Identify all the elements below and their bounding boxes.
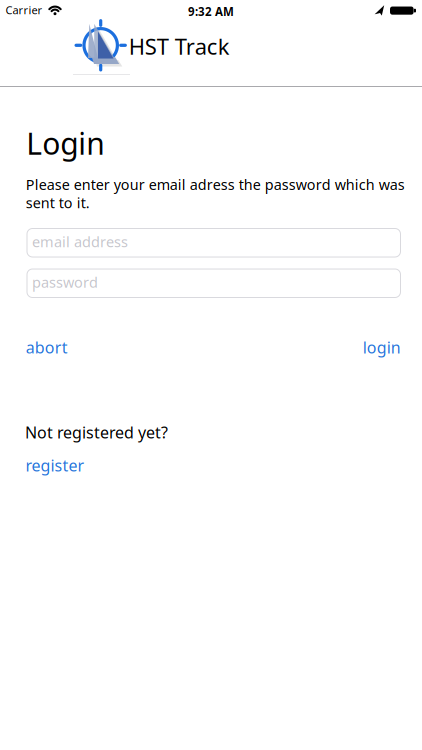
staticText: 9:32 AM — [188, 4, 234, 19]
staticText: email address — [32, 232, 128, 251]
staticText: HST Track — [129, 32, 230, 61]
staticText: Please enter your email adress the passw… — [26, 175, 405, 212]
button[interactable]: register — [25, 455, 84, 476]
staticText: password — [32, 272, 98, 292]
staticText: Login — [26, 123, 105, 163]
staticText: Carrier — [5, 3, 42, 17]
staticText: abort — [26, 337, 68, 358]
staticText: register — [25, 455, 84, 476]
button[interactable]: email address — [26, 228, 401, 257]
button[interactable]: login — [363, 337, 401, 358]
staticText: Not registered yet? — [25, 422, 168, 443]
button[interactable]: password — [26, 268, 401, 298]
staticText: login — [363, 337, 401, 358]
button[interactable]: abort — [26, 337, 68, 358]
